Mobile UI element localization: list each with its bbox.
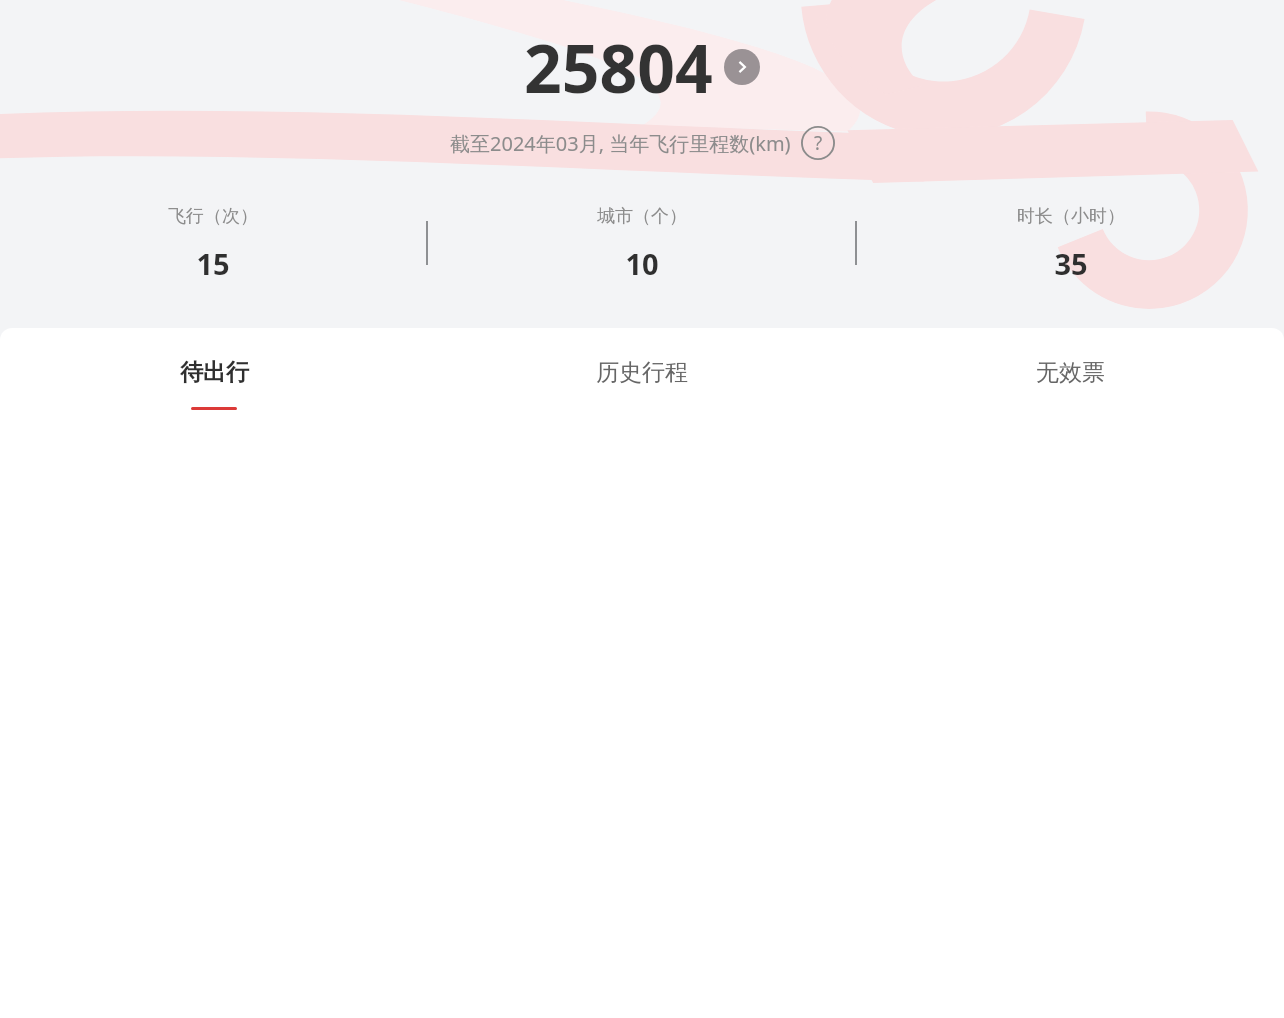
button[interactable]: 待出行 (0, 358, 428, 410)
staticText: 无效票 (1036, 358, 1105, 387)
staticText: ? (814, 130, 823, 156)
button[interactable]: 25804 (524, 22, 760, 112)
staticText: 10 (625, 244, 659, 281)
staticText: 15 (196, 244, 230, 281)
button[interactable]: Help about mileage (801, 126, 835, 160)
staticText: 待出行 (180, 358, 249, 387)
button[interactable]: 历史行程 (428, 358, 856, 410)
staticText: 35 (1054, 244, 1088, 281)
button[interactable]: 飞行（次） (0, 205, 426, 281)
button[interactable]: 城市（个） (428, 205, 855, 281)
staticText: 历史行程 (596, 358, 688, 387)
staticText: 截至2024年03月, 当年飞行里程数(km) (450, 130, 791, 157)
button[interactable]: View mileage details (724, 49, 760, 85)
staticText: 时长（小时） (1017, 205, 1125, 228)
staticText: 飞行（次） (168, 205, 258, 228)
button[interactable]: 时长（小时） (857, 205, 1284, 281)
staticText: 城市（个） (597, 205, 687, 228)
staticText: 25804 (524, 22, 713, 112)
button[interactable]: 无效票 (856, 358, 1284, 410)
